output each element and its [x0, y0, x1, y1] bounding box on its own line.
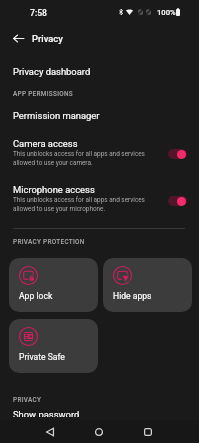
- button[interactable]: [0, 104, 199, 128]
- staticText: Show password: [13, 409, 80, 417]
- button[interactable]: [0, 60, 199, 86]
- staticText: 100%: [157, 8, 176, 17]
- staticText: Privacy dashboard: [13, 66, 91, 77]
- button[interactable]: Camera access: [168, 149, 187, 159]
- button[interactable]: Navigate up: [6, 26, 30, 50]
- staticText: Microphone access: [13, 184, 95, 195]
- button[interactable]: Private Safe: [9, 319, 98, 373]
- staticText: This unblocks access for all apps and se…: [13, 150, 145, 167]
- button[interactable]: [0, 178, 199, 220]
- staticText: Permission manager: [13, 110, 100, 121]
- staticText: APP PERMISSIONS: [13, 90, 73, 98]
- staticText: This unblocks access for all apps and se…: [13, 196, 145, 213]
- staticText: PRIVACY: [13, 396, 42, 404]
- button[interactable]: Back: [38, 420, 62, 443]
- staticText: Private Safe: [19, 352, 65, 362]
- button[interactable]: Home: [87, 420, 111, 443]
- button[interactable]: Hide apps: [103, 258, 192, 312]
- staticText: PRIVACY PROTECTION: [13, 238, 85, 246]
- staticText: Privacy: [32, 33, 63, 44]
- staticText: Camera access: [13, 138, 78, 149]
- button[interactable]: Microphone access: [168, 196, 187, 206]
- staticText: Hide apps: [113, 291, 152, 301]
- button[interactable]: Recent apps: [136, 420, 160, 443]
- button[interactable]: App lock: [9, 258, 98, 312]
- button[interactable]: Show password: [0, 406, 199, 417]
- staticText: App lock: [19, 291, 53, 301]
- staticText: 7:58: [30, 8, 47, 18]
- button[interactable]: [0, 131, 199, 173]
